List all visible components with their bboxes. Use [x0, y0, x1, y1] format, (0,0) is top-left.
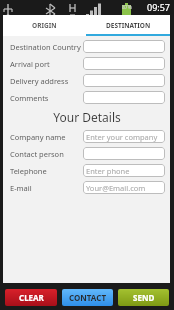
staticText: Enter your company: [86, 132, 158, 142]
staticText: Destination Country: [10, 42, 83, 52]
button[interactable]: Enter your company: [83, 130, 165, 143]
button[interactable]: SEND: [118, 289, 169, 306]
button[interactable]: ORIGIN: [3, 15, 86, 36]
button[interactable]: [83, 147, 165, 160]
staticText: E-mail: [10, 183, 83, 193]
button[interactable]: [83, 40, 165, 53]
button[interactable]: Your@Email.com: [83, 181, 165, 194]
staticText: Company name: [10, 132, 83, 142]
staticText: Enter phone: [86, 166, 130, 176]
staticText: Telephone: [10, 166, 83, 176]
staticText: DESTINATION: [106, 21, 151, 30]
button[interactable]: CLEAR: [5, 289, 57, 306]
button[interactable]: Enter phone: [83, 164, 165, 177]
button[interactable]: DESTINATION: [86, 15, 170, 36]
staticText: 87%: [122, 4, 132, 11]
staticText: Contact person: [10, 149, 83, 159]
button[interactable]: CONTACT: [62, 289, 113, 306]
staticText: CLEAR: [19, 292, 44, 303]
staticText: Comments: [10, 93, 83, 103]
staticText: 09:57: [147, 1, 171, 13]
staticText: CONTACT: [69, 292, 106, 303]
staticText: ORIGIN: [32, 21, 57, 30]
button[interactable]: [83, 74, 165, 87]
staticText: Your@Email.com: [86, 183, 146, 193]
staticText: Delivery address: [10, 76, 83, 86]
staticText: SEND: [133, 292, 155, 303]
button[interactable]: [83, 91, 165, 104]
button[interactable]: [83, 57, 165, 70]
staticText: Your Details: [53, 109, 121, 125]
staticText: Arrival port: [10, 59, 83, 69]
